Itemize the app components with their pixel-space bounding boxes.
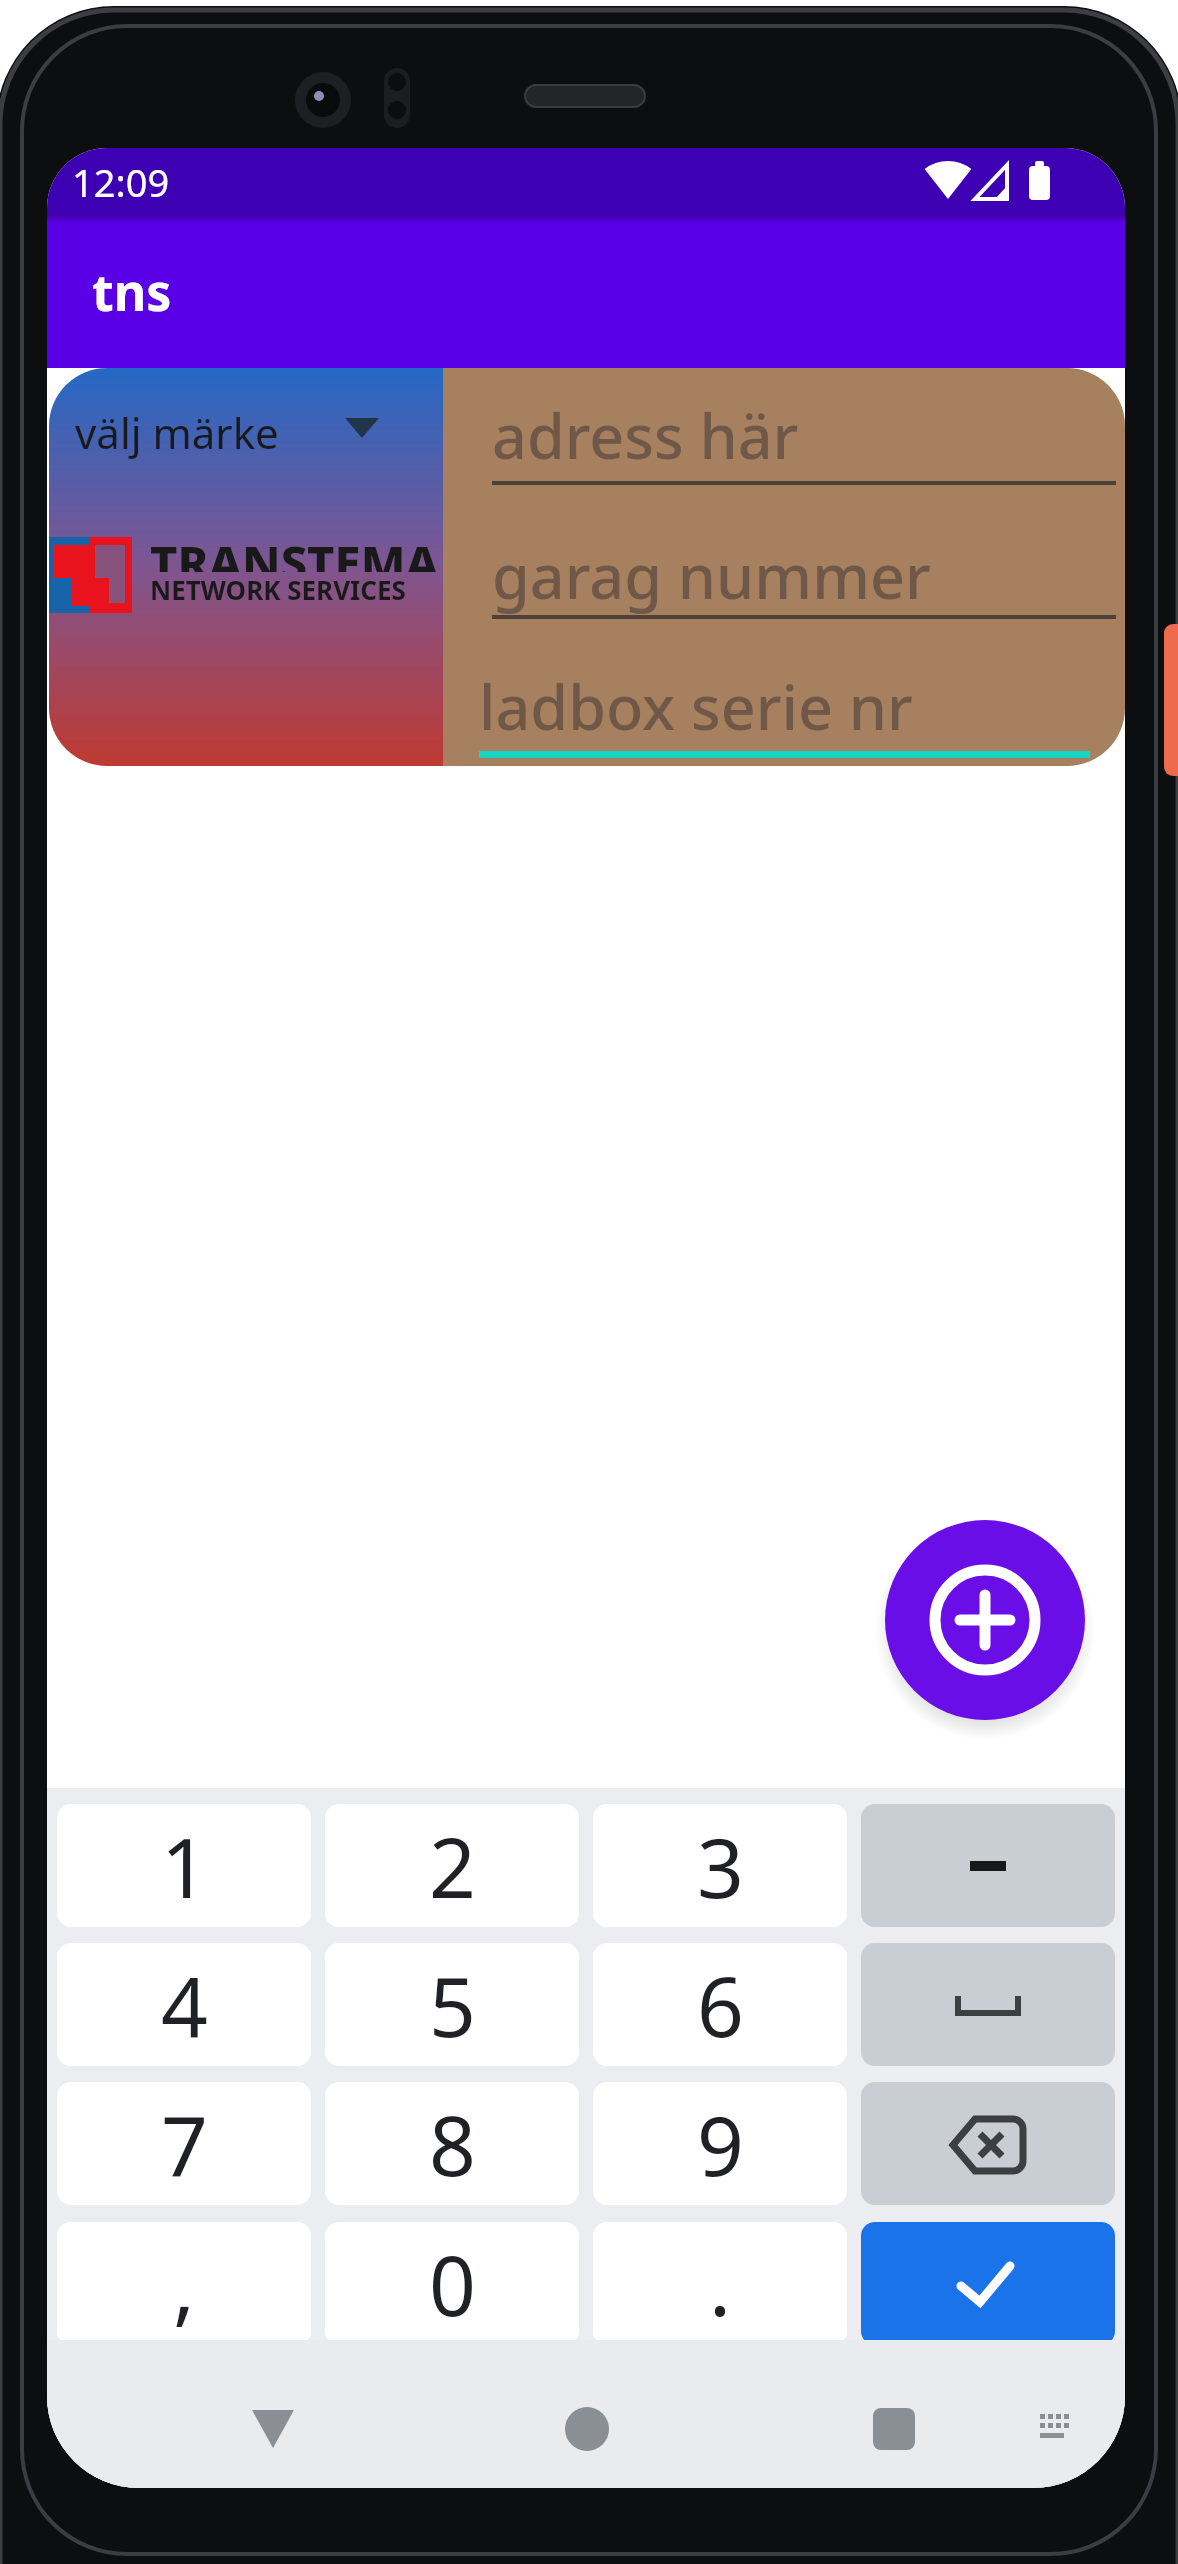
button[interactable]: garag nummer — [492, 533, 1092, 617]
button[interactable]: 7 — [57, 2082, 311, 2205]
button[interactable]: välj märke — [49, 368, 443, 766]
staticText: 3 — [697, 1810, 744, 1922]
button[interactable] — [861, 1804, 1115, 1927]
button[interactable]: 9 — [593, 2082, 847, 2205]
staticText: välj märke — [75, 404, 279, 460]
button[interactable] — [885, 1520, 1085, 1720]
staticText: . — [709, 2228, 731, 2340]
button[interactable]: 8 — [325, 2082, 579, 2205]
button[interactable] — [861, 2082, 1115, 2205]
button[interactable]: 5 — [325, 1943, 579, 2066]
button[interactable]: 0 — [325, 2222, 579, 2345]
button[interactable] — [242, 2400, 304, 2458]
button[interactable] — [861, 1943, 1115, 2066]
staticText: 1 — [161, 1810, 208, 1922]
button[interactable] — [556, 2400, 618, 2458]
staticText: 8 — [429, 2088, 476, 2200]
staticText: 12:09 — [72, 156, 170, 208]
button[interactable]: adress här — [492, 393, 1092, 477]
staticText: 0 — [429, 2228, 476, 2340]
button[interactable]: 6 — [593, 1943, 847, 2066]
button[interactable]: 3 — [593, 1804, 847, 1927]
staticText: , — [173, 2228, 195, 2340]
button[interactable] — [863, 2400, 925, 2458]
staticText: 4 — [161, 1949, 208, 2061]
staticText: ladbox serie nr — [479, 665, 913, 748]
button[interactable] — [861, 2222, 1115, 2345]
button[interactable]: ladbox serie nr — [479, 664, 1099, 748]
button[interactable]: 4 — [57, 1943, 311, 2066]
staticText: 7 — [161, 2088, 208, 2200]
button[interactable] — [1031, 2404, 1083, 2450]
button[interactable]: 2 — [325, 1804, 579, 1927]
staticText: 9 — [697, 2088, 744, 2200]
staticText: TRANSTEMA — [150, 530, 439, 572]
button[interactable]: , — [57, 2222, 311, 2345]
staticText: 2 — [429, 1810, 476, 1922]
staticText: 5 — [429, 1949, 476, 2061]
staticText: adress här — [492, 394, 799, 477]
staticText: garag nummer — [492, 534, 931, 617]
staticText: NETWORK SERVICES — [150, 572, 406, 604]
staticText: 6 — [697, 1949, 744, 2061]
staticText: tns — [92, 258, 172, 326]
button[interactable]: 1 — [57, 1804, 311, 1927]
button[interactable]: . — [593, 2222, 847, 2345]
